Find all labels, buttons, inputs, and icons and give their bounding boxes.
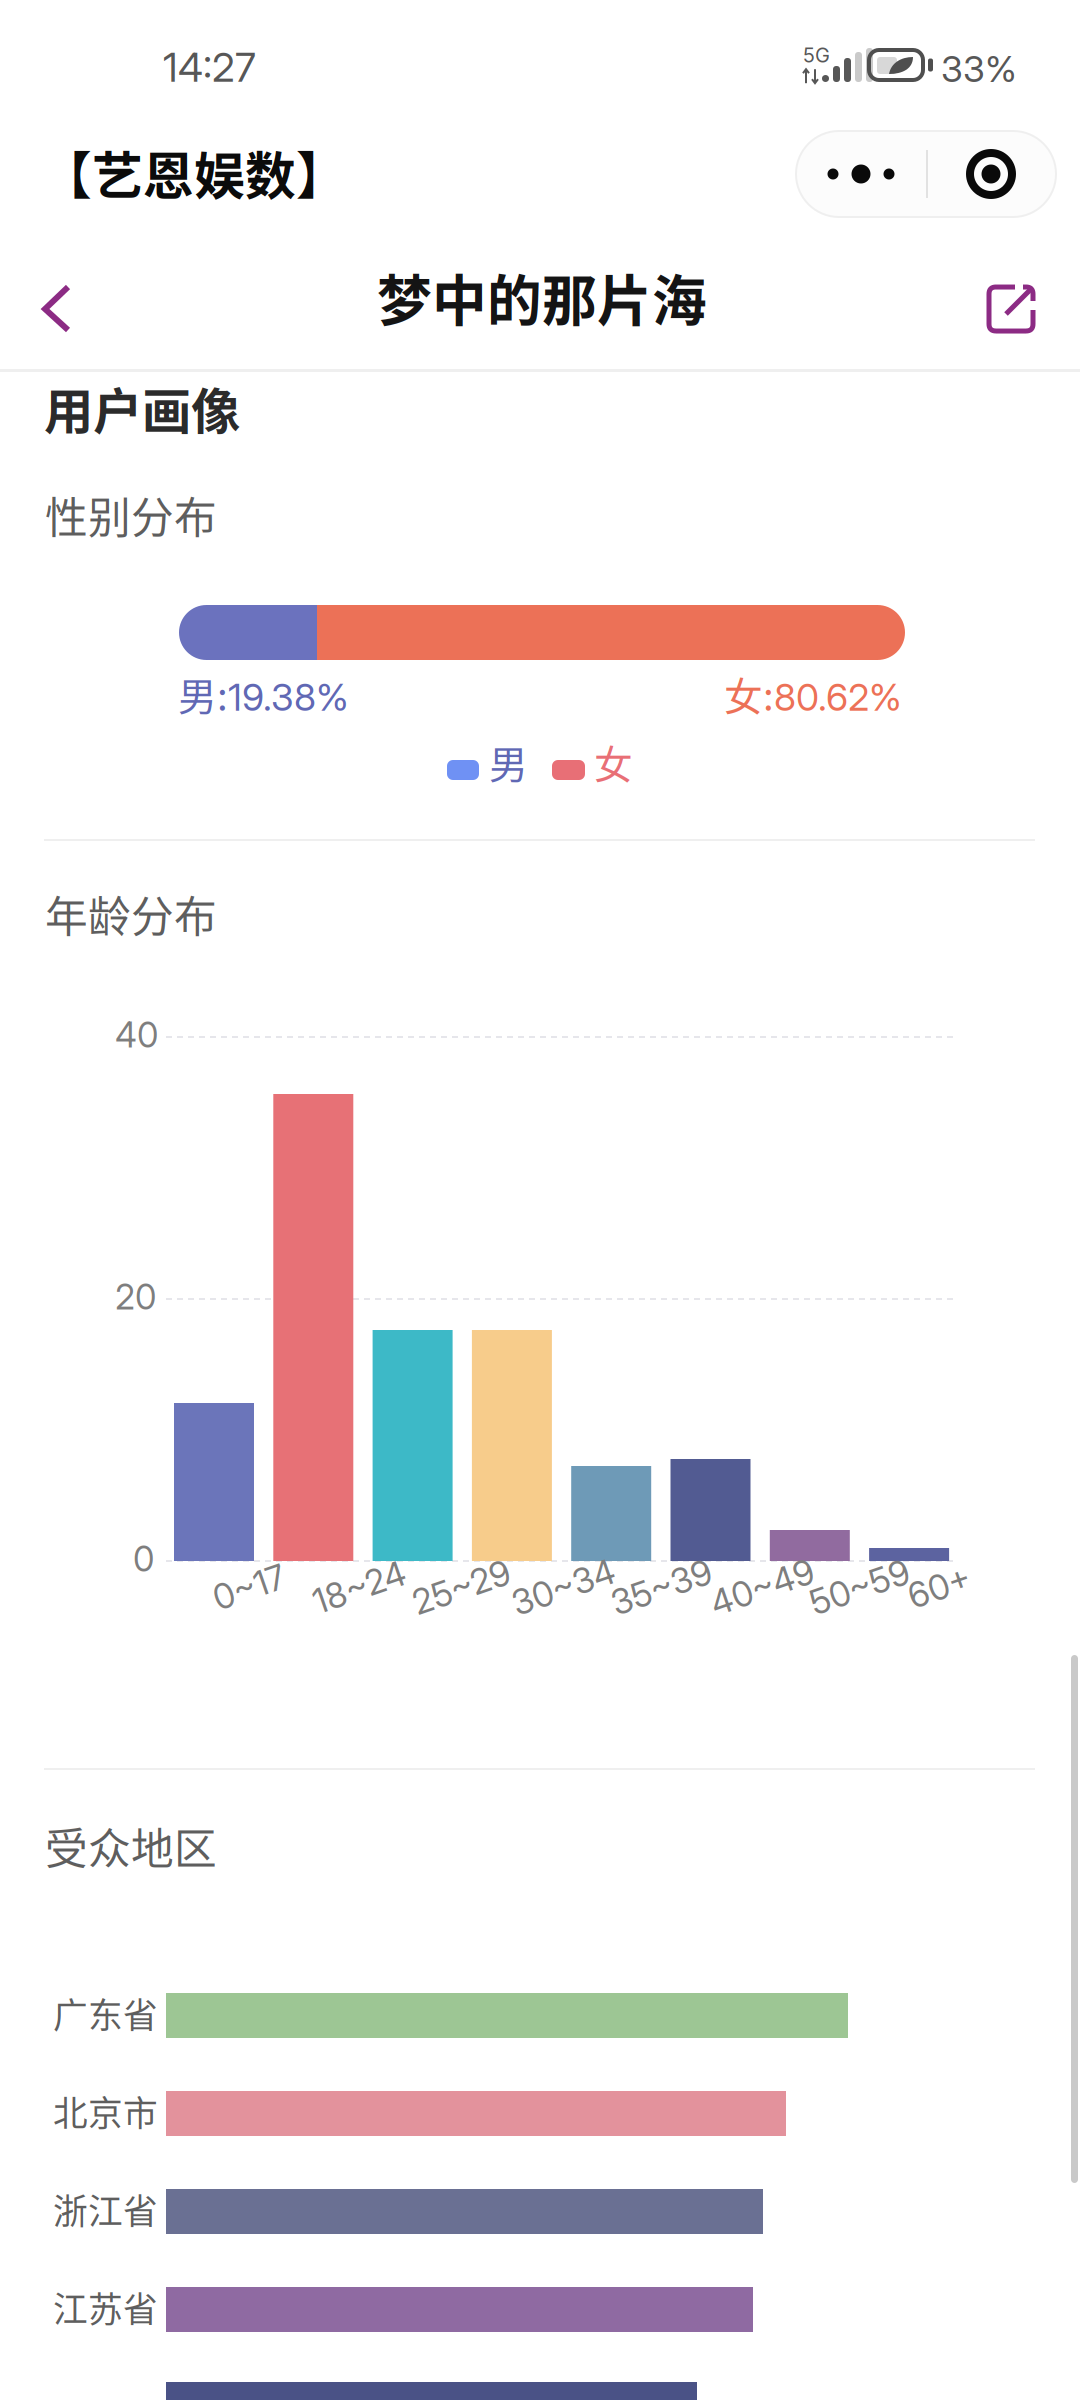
- staticText: 20: [115, 1276, 156, 1318]
- button[interactable]: Share: [985, 283, 1051, 349]
- staticText: 25~29: [411, 1566, 513, 1608]
- staticText: 江苏省: [53, 2282, 158, 2332]
- staticText: 35~39: [609, 1566, 714, 1608]
- staticText: 女: [594, 734, 633, 790]
- staticText: 14:27: [163, 43, 256, 91]
- button[interactable]: Close mini program: [926, 131, 1056, 217]
- staticText: 33%: [941, 47, 1017, 91]
- staticText: 60+: [907, 1566, 971, 1608]
- staticText: 广东省: [53, 1988, 158, 2038]
- staticText: 0~17: [212, 1566, 286, 1608]
- staticText: 男: [489, 734, 528, 790]
- staticText: 0: [133, 1538, 154, 1580]
- staticText: 用户画像: [44, 372, 240, 443]
- staticText: 受众地区: [45, 1815, 217, 1877]
- staticText: 浙江省: [53, 2184, 158, 2234]
- staticText: 北京市: [53, 2086, 158, 2136]
- button[interactable]: More options: [796, 131, 926, 217]
- staticText: 年龄分布: [45, 883, 217, 945]
- staticText: 19.38%: [228, 675, 349, 720]
- staticText: 18~24: [311, 1566, 407, 1608]
- staticText: 女:: [724, 666, 774, 722]
- button[interactable]: Back: [2, 274, 98, 374]
- staticText: 40: [115, 1014, 158, 1056]
- staticText: 50~59: [808, 1566, 912, 1608]
- staticText: 80.62%: [774, 675, 902, 720]
- staticText: 梦中的那片海: [377, 257, 707, 336]
- staticText: 男:: [178, 666, 228, 722]
- staticText: 性别分布: [45, 484, 217, 546]
- staticText: 30~34: [510, 1566, 617, 1608]
- staticText: 5G: [803, 43, 830, 67]
- staticText: 【艺恩娱数】: [41, 136, 347, 209]
- staticText: 40~49: [708, 1566, 816, 1608]
